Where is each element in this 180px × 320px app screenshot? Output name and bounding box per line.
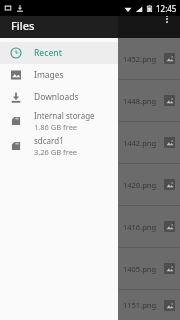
button[interactable]: 1452.png [118, 38, 180, 79]
staticText: 1448.png [123, 96, 161, 106]
staticText: sdcard1 [34, 135, 64, 146]
staticText: 12:45 [156, 3, 177, 14]
staticText: 1151.png [123, 300, 161, 310]
staticText: Recent [34, 47, 62, 59]
button[interactable]: 1448.png [118, 80, 180, 121]
staticText: 3.26 GB free [34, 147, 78, 157]
button[interactable]: 1442.png [118, 122, 180, 163]
button[interactable]: Recent [0, 42, 118, 64]
staticText: 1.86 GB free [34, 122, 78, 132]
staticText: Files [11, 18, 35, 33]
button[interactable]: 1416.png [118, 206, 180, 247]
button[interactable]: Images [0, 64, 118, 86]
staticText: Downloads [34, 91, 79, 103]
staticText: Images [34, 69, 64, 81]
staticText: 1405.png [123, 264, 161, 274]
button[interactable]: More options [158, 10, 176, 28]
staticText: Internal storage [34, 110, 95, 121]
staticText: 1416.png [123, 222, 161, 232]
button[interactable]: Internal storage [0, 108, 118, 133]
button[interactable]: sdcard1 [0, 133, 118, 158]
button[interactable]: Downloads [0, 86, 118, 108]
staticText: 1452.png [123, 54, 161, 64]
button[interactable]: 1420.png [118, 164, 180, 205]
button[interactable]: 1151.png [118, 290, 180, 320]
button[interactable]: 1405.png [118, 248, 180, 289]
staticText: 1420.png [123, 180, 161, 190]
staticText: 1442.png [123, 138, 161, 148]
